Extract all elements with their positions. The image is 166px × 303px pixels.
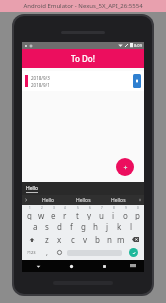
staticText: c (71, 234, 75, 245)
button[interactable]: f (65, 220, 77, 233)
button[interactable]: Hellos (101, 195, 136, 205)
staticText: a (33, 221, 38, 232)
button[interactable]: Home (55, 260, 88, 272)
staticText: 1 (29, 206, 31, 210)
button[interactable]: n (103, 233, 115, 246)
staticText: 2018/9/3 (31, 75, 50, 81)
button[interactable]: , (40, 246, 53, 259)
staticText: Hellos (111, 197, 126, 204)
staticText: 8 (113, 206, 115, 210)
staticText: y (87, 210, 92, 220)
staticText: g (81, 221, 86, 232)
button[interactable]: 4 (59, 206, 71, 220)
button[interactable]: c (66, 233, 79, 246)
staticText: z (45, 234, 49, 245)
staticText: q (27, 210, 32, 220)
button[interactable]: d (53, 220, 65, 233)
staticText: d (57, 221, 62, 232)
button[interactable]: x (53, 233, 66, 246)
staticText: 2 (41, 206, 43, 210)
button[interactable]: 8 (107, 206, 119, 220)
staticText: 3 (53, 206, 55, 210)
staticText: 8:09 (134, 43, 142, 48)
button[interactable]: Hellos (66, 195, 101, 205)
button[interactable]: Shift (23, 233, 40, 246)
button[interactable]: 7 (95, 206, 107, 220)
staticText: 9 (125, 206, 127, 210)
staticText: Hello (26, 185, 39, 192)
button[interactable]: Emoji (53, 246, 66, 259)
button[interactable]: Keyboard options (136, 195, 144, 205)
button[interactable]: Recents (88, 260, 121, 272)
staticText: e (51, 210, 56, 220)
staticText: u (99, 210, 104, 220)
staticText: n (107, 234, 112, 245)
button[interactable]: 9 (119, 206, 131, 220)
button[interactable]: 2 (35, 206, 47, 220)
button[interactable]: 0 (131, 206, 143, 220)
staticText: b (95, 234, 100, 245)
staticText: To Do! (71, 53, 95, 64)
button[interactable]: Hide keyboard (121, 260, 144, 272)
staticText: h (93, 221, 98, 232)
staticText: 4 (64, 206, 66, 210)
button[interactable]: Edit task (133, 74, 141, 88)
button[interactable]: 3 (47, 206, 59, 220)
staticText: 6 (89, 206, 91, 210)
staticText: l (130, 221, 133, 232)
button[interactable]: Add task (116, 158, 134, 176)
button[interactable]: m (115, 233, 127, 246)
button[interactable]: a (29, 220, 41, 233)
staticText: t (76, 210, 79, 220)
button[interactable]: g (77, 220, 89, 233)
staticText: 0 (137, 206, 139, 210)
staticText: k (117, 221, 122, 232)
button[interactable]: 5 (71, 206, 83, 220)
button[interactable]: ?123 (23, 246, 40, 259)
staticText: v (83, 234, 88, 245)
button[interactable]: Back (22, 260, 55, 272)
staticText: , (46, 248, 48, 258)
button[interactable]: More suggestions (22, 195, 30, 205)
button[interactable]: Hello (30, 195, 66, 205)
button[interactable]: v (79, 233, 91, 246)
button[interactable]: j (101, 220, 113, 233)
staticText: x (57, 234, 62, 245)
staticText: Android Emulator - Nexus_5X_API_26:5554 (23, 2, 143, 10)
staticText: ?123 (27, 250, 36, 255)
button[interactable]: k (113, 220, 125, 233)
button[interactable]: b (91, 233, 103, 246)
staticText: Hello (42, 197, 55, 204)
button[interactable]: Hello (22, 182, 144, 195)
staticText: i (112, 210, 115, 220)
staticText: 5 (77, 206, 79, 210)
button[interactable]: 1 (23, 206, 35, 220)
staticText: p (135, 210, 140, 220)
staticText: o (123, 210, 128, 220)
staticText: s (45, 221, 49, 232)
staticText: 7 (101, 206, 103, 210)
button[interactable]: z (40, 233, 53, 246)
staticText: m (117, 234, 125, 245)
staticText: 2018/9/1 (31, 82, 50, 88)
button[interactable]: 2018/9/3 (22, 71, 144, 91)
staticText: w (38, 210, 45, 220)
staticText: Hellos (76, 197, 91, 204)
button[interactable]: l (125, 220, 137, 233)
button[interactable]: Enter (123, 246, 143, 259)
button[interactable]: h (89, 220, 101, 233)
staticText: f (70, 221, 73, 232)
staticText: j (106, 221, 109, 232)
button[interactable]: Backspace (127, 233, 143, 246)
staticText: r (63, 210, 67, 220)
button[interactable]: 6 (83, 206, 95, 220)
button[interactable]: s (41, 220, 53, 233)
